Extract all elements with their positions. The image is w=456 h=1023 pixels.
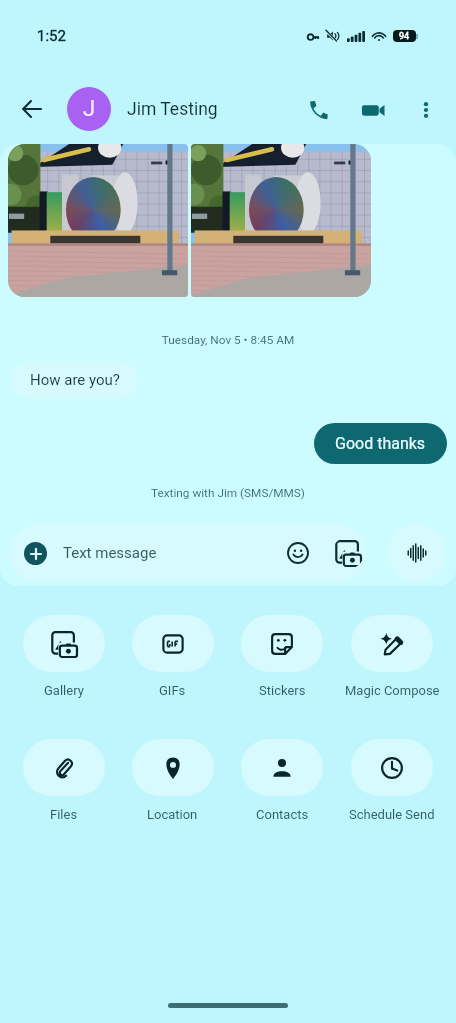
button[interactable]: Photo xyxy=(8,144,188,297)
button[interactable]: Photo xyxy=(191,144,371,297)
button[interactable]: Voice message xyxy=(388,524,446,582)
staticText: Gallery xyxy=(44,683,84,698)
button[interactable]: Back xyxy=(10,87,54,131)
staticText: 1:52 xyxy=(37,27,66,45)
staticText: Schedule Send xyxy=(349,807,435,822)
button[interactable]: Gallery xyxy=(332,537,364,569)
staticText: Files xyxy=(50,807,78,822)
button[interactable]: Call xyxy=(296,87,341,132)
button[interactable]: How are you? xyxy=(12,361,138,399)
staticText: Texting with Jim (SMS/MMS) xyxy=(0,486,456,500)
button[interactable]: Emoji xyxy=(282,537,314,569)
button[interactable]: More options xyxy=(403,87,448,132)
staticText: Contacts xyxy=(256,807,309,822)
button[interactable]: Attach xyxy=(24,542,47,565)
button[interactable]: Magic Compose xyxy=(337,615,447,698)
staticText: Tuesday, Nov 5 • 8:45 AM xyxy=(0,333,456,347)
staticText: Jim Testing xyxy=(127,99,218,120)
button[interactable]: J xyxy=(67,87,218,131)
button[interactable]: Gallery xyxy=(9,615,118,698)
staticText: Stickers xyxy=(259,683,306,698)
staticText: J xyxy=(83,96,96,122)
button[interactable]: GIFs xyxy=(118,615,227,698)
staticText: 94 xyxy=(399,31,410,42)
staticText: Magic Compose xyxy=(345,683,440,698)
staticText: Good thanks xyxy=(335,434,426,453)
button[interactable]: Schedule Send xyxy=(337,739,447,822)
button[interactable]: Stickers xyxy=(227,615,337,698)
button[interactable]: Attach xyxy=(10,524,366,582)
staticText: How are you? xyxy=(30,371,120,389)
staticText: GIFs xyxy=(159,683,186,698)
button[interactable]: Contacts xyxy=(227,739,337,822)
staticText: Location xyxy=(147,807,198,822)
button[interactable]: Video call xyxy=(350,87,395,132)
button[interactable]: Files xyxy=(9,739,118,822)
button[interactable]: Good thanks xyxy=(314,423,447,464)
button[interactable]: Location xyxy=(118,739,227,822)
staticText: Text message xyxy=(63,544,157,562)
